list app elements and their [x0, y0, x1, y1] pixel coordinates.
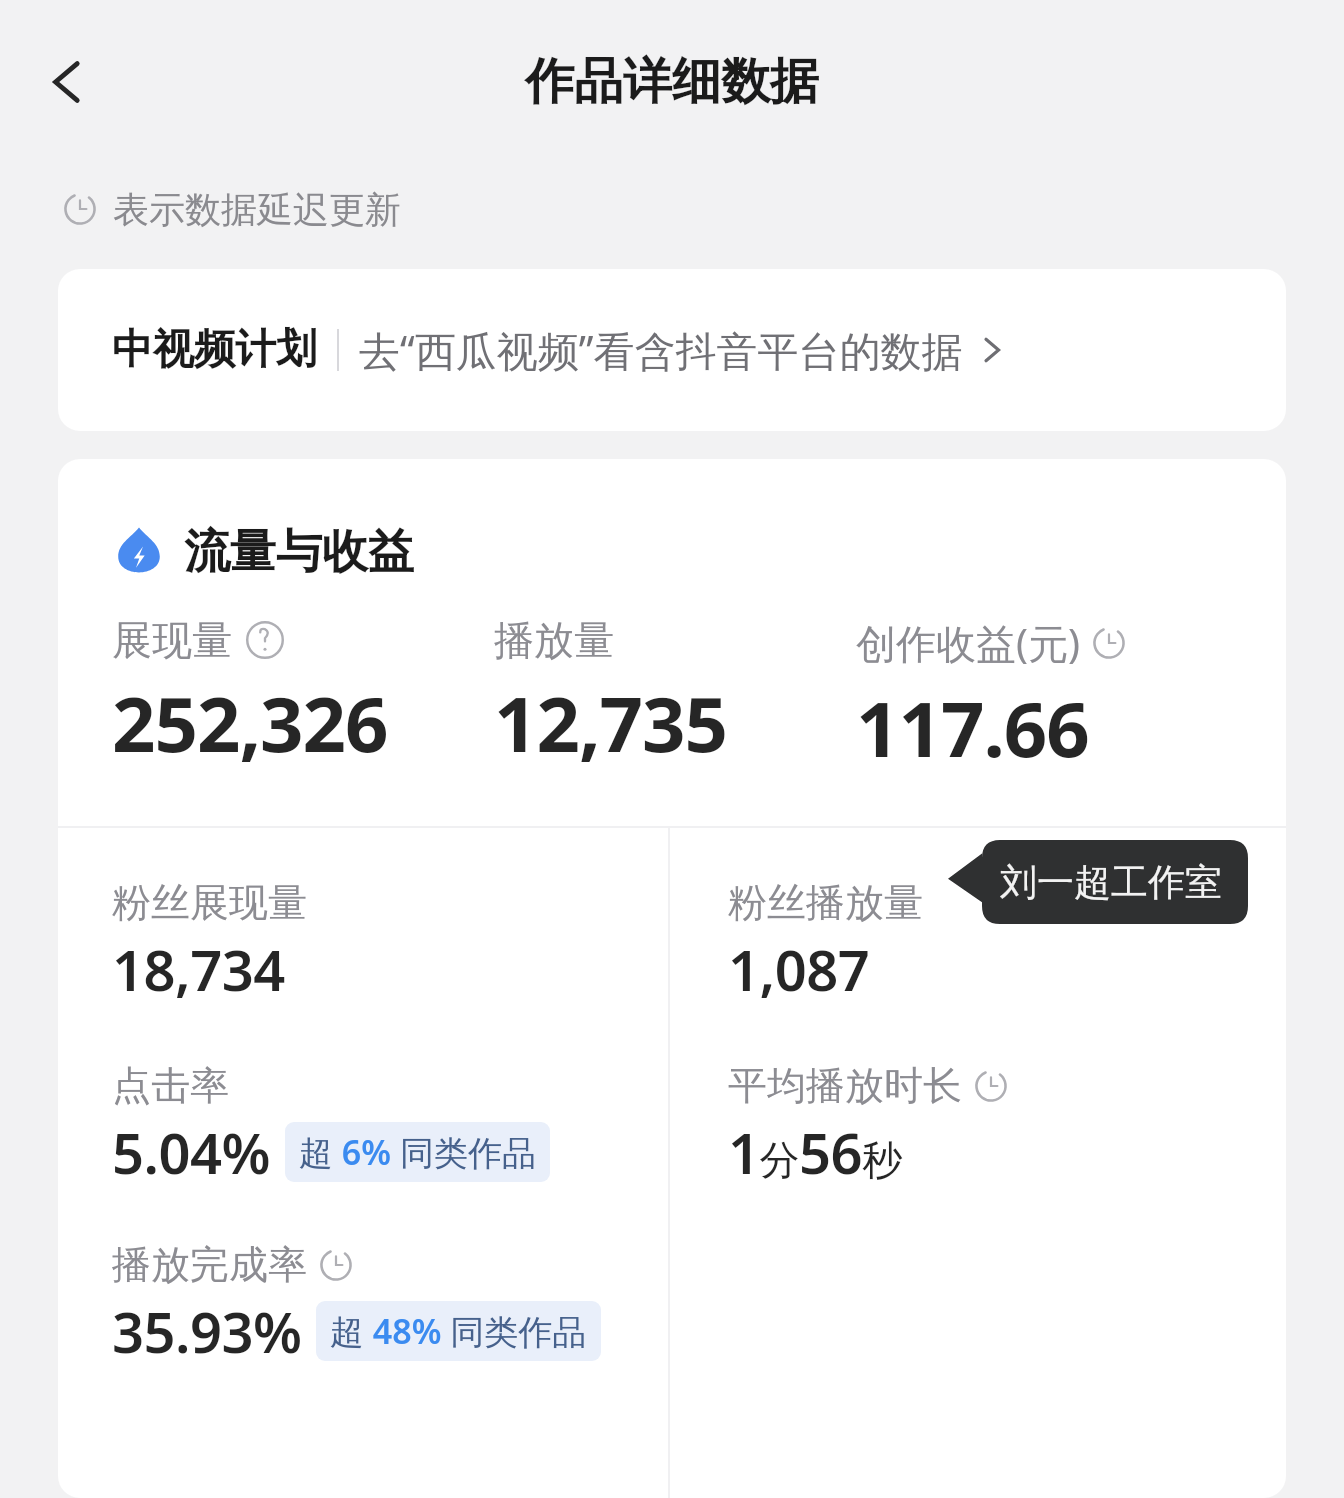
- staticText: 18,734: [112, 931, 285, 1007]
- staticText: 播放量: [494, 615, 614, 665]
- staticText: 5.04%: [112, 1114, 271, 1190]
- staticText: 去“西瓜视频”看含抖音平台的数据: [359, 322, 963, 378]
- button[interactable]: 中视频计划: [58, 269, 1286, 431]
- staticText: 252,326: [112, 671, 388, 775]
- staticText: 1分56秒: [728, 1114, 902, 1190]
- button[interactable]: 展现量说明: [243, 618, 287, 662]
- staticText: 1,087: [728, 931, 870, 1007]
- staticText: 刘一超工作室: [1000, 859, 1222, 906]
- staticText: 12,735: [494, 671, 728, 775]
- button[interactable]: 刘一超工作室: [948, 840, 1248, 924]
- staticText: 作品详细数据: [525, 51, 819, 113]
- staticText: 117.66: [856, 676, 1089, 780]
- staticText: 中视频计划: [112, 324, 317, 376]
- staticText: 粉丝播放量: [728, 878, 923, 927]
- staticText: 创作收益(元): [856, 615, 1080, 670]
- button[interactable]: Back: [22, 36, 114, 128]
- staticText: 流量与收益: [184, 523, 414, 581]
- staticText: 播放完成率: [112, 1240, 307, 1289]
- staticText: 超 48% 同类作品: [330, 1308, 587, 1354]
- staticText: 35.93%: [112, 1293, 302, 1369]
- staticText: 超 6% 同类作品: [299, 1129, 536, 1175]
- staticText: 平均播放时长: [728, 1061, 962, 1110]
- staticText: 粉丝展现量: [112, 878, 307, 927]
- staticText: 点击率: [112, 1061, 229, 1110]
- staticText: 表示数据延迟更新: [113, 187, 401, 232]
- staticText: 展现量: [112, 615, 232, 665]
